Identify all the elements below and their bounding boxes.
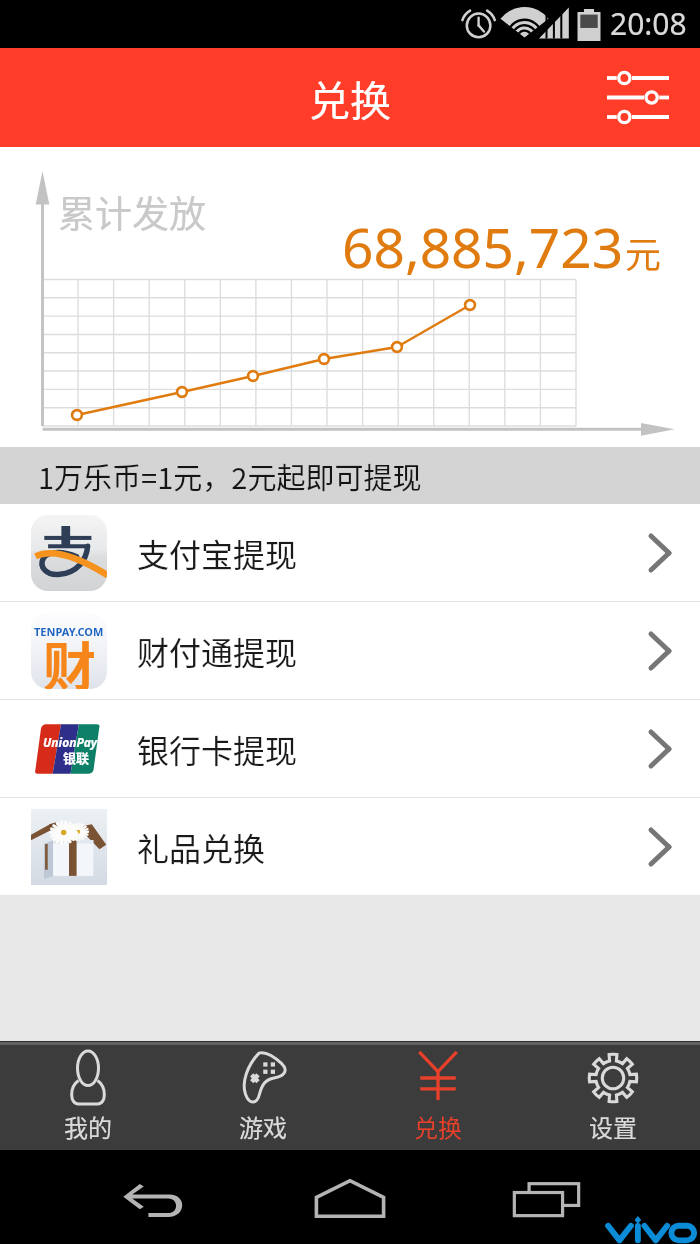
button[interactable]: TENPAY.COM xyxy=(0,602,700,699)
staticText: 银行卡提现 xyxy=(137,726,298,772)
button[interactable]: Home xyxy=(300,1172,400,1220)
button[interactable]: 支付宝提现 xyxy=(0,504,700,601)
button[interactable]: Recent apps xyxy=(496,1174,596,1222)
button[interactable]: 我的 xyxy=(0,1045,175,1150)
staticText: 元 xyxy=(625,226,662,278)
staticText: 兑换 xyxy=(309,68,391,127)
staticText: 兑换 xyxy=(414,1109,462,1144)
staticText: 我的 xyxy=(64,1109,112,1144)
button[interactable]: 设置 xyxy=(525,1045,700,1150)
staticText: 支付宝提现 xyxy=(137,530,298,576)
button[interactable]: 礼品兑换 xyxy=(0,798,700,895)
button[interactable]: 游戏 xyxy=(175,1045,350,1150)
staticText: 20:08 xyxy=(610,3,687,44)
button[interactable]: 兑换 xyxy=(350,1045,525,1150)
button[interactable]: Filter settings xyxy=(594,56,682,140)
staticText: 68,885,723 xyxy=(342,209,624,284)
staticText: 1万乐币=1元，2元起即可提现 xyxy=(38,455,422,497)
button[interactable]: Back xyxy=(104,1173,204,1221)
staticText: 财 xyxy=(43,626,96,689)
staticText: 礼品兑换 xyxy=(137,824,266,870)
staticText: 财付通提现 xyxy=(137,628,298,674)
staticText: 累计发放 xyxy=(58,185,206,239)
button[interactable]: UnionPay xyxy=(0,700,700,797)
staticText: 设置 xyxy=(589,1109,637,1144)
staticText: 银联 xyxy=(63,748,90,767)
staticText: 游戏 xyxy=(239,1109,287,1144)
staticText: TENPAY.COM xyxy=(34,624,104,639)
staticText: UnionPay xyxy=(43,734,98,750)
